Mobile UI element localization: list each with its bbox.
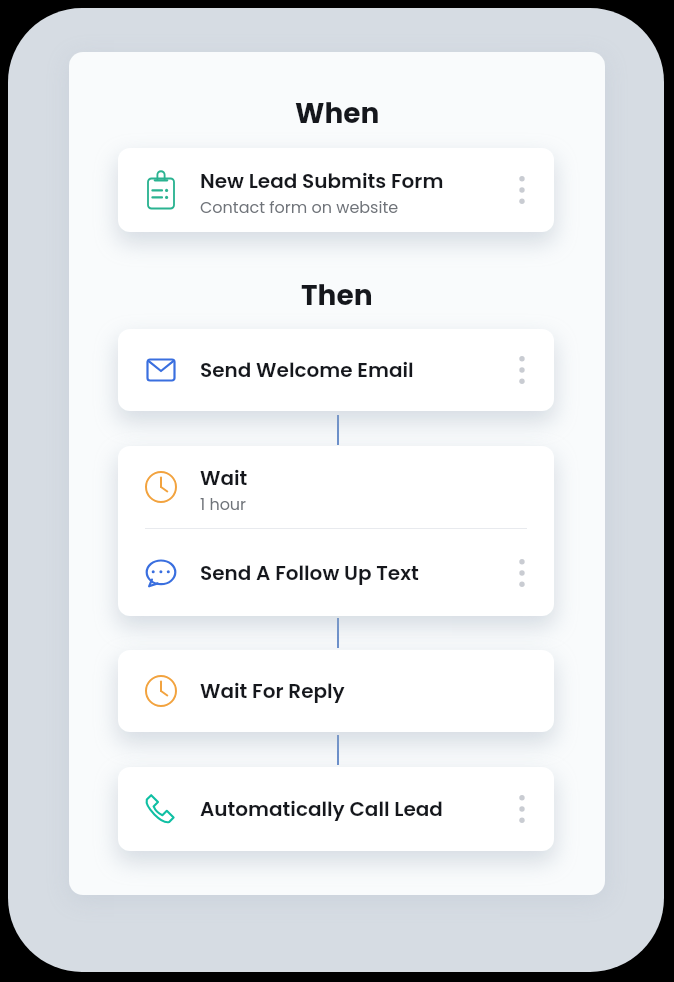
staticText: Then (301, 276, 373, 315)
button[interactable]: Send Welcome Email (118, 329, 554, 411)
staticText: 1 hour (200, 493, 247, 515)
staticText: Send Welcome Email (200, 356, 414, 384)
button[interactable]: More options (507, 552, 537, 594)
staticText: Wait (200, 464, 248, 492)
staticText: Wait For Reply (200, 677, 345, 705)
button[interactable]: More options (507, 349, 537, 391)
button[interactable]: New Lead Submits Form (118, 148, 554, 232)
staticText: New Lead Submits Form (200, 167, 444, 195)
button[interactable]: Wait (118, 446, 554, 616)
button[interactable]: Automatically Call Lead (118, 767, 554, 851)
staticText: Automatically Call Lead (200, 795, 443, 823)
staticText: When (295, 94, 380, 133)
staticText: Contact form on website (200, 196, 399, 218)
staticText: Send A Follow Up Text (200, 559, 419, 587)
button[interactable]: More options (507, 169, 537, 211)
button[interactable]: Wait For Reply (118, 650, 554, 732)
button[interactable]: More options (507, 788, 537, 830)
